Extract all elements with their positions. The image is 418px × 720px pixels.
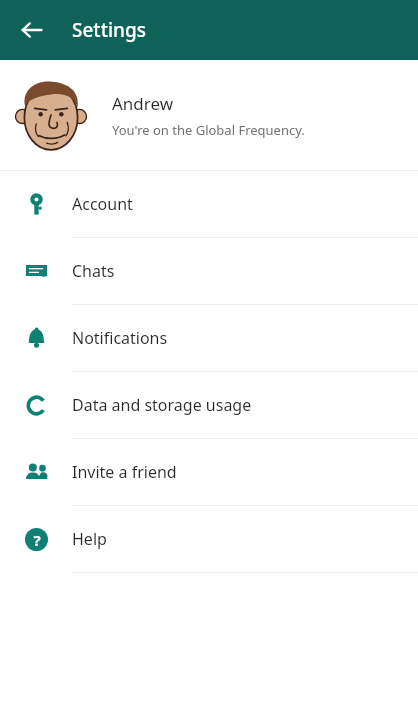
button[interactable]: Notifications <box>0 305 418 371</box>
staticText: Account <box>72 193 133 215</box>
button[interactable]: Account <box>0 171 418 237</box>
staticText: Data and storage usage <box>72 394 252 416</box>
button[interactable]: Invite a friend <box>0 439 418 505</box>
staticText: Invite a friend <box>72 461 177 483</box>
staticText: Andrew <box>112 92 174 115</box>
staticText: ? <box>33 530 41 550</box>
button[interactable]: Back <box>12 10 52 50</box>
button[interactable]: Andrew <box>0 60 418 170</box>
staticText: Help <box>72 528 107 550</box>
staticText: You're on the Global Frequency. <box>112 121 305 139</box>
staticText: Chats <box>72 260 115 282</box>
button[interactable]: Data and storage usage <box>0 372 418 438</box>
staticText: Notifications <box>72 327 168 349</box>
button[interactable]: ? <box>0 506 418 572</box>
staticText: Settings <box>72 17 146 43</box>
button[interactable]: Chats <box>0 238 418 304</box>
